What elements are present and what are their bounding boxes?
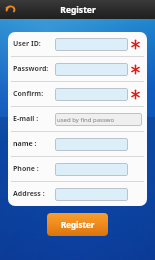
staticText: used by find passwo [57, 116, 115, 124]
button[interactable]: Password: [8, 57, 147, 81]
staticText: Register [61, 219, 95, 230]
button[interactable]: Confirm: [8, 82, 147, 106]
staticText: E-mail : [13, 114, 39, 124]
staticText: Confirm: [13, 89, 44, 99]
button[interactable]: Phone : [8, 157, 147, 181]
button[interactable]: E-mail : [8, 107, 147, 131]
staticText: Register [60, 4, 96, 16]
staticText: User ID: [13, 39, 41, 49]
button[interactable]: User ID: [8, 32, 147, 56]
staticText: Phone : [13, 164, 39, 174]
staticText: Address : [13, 189, 45, 199]
button[interactable]: Register [47, 213, 108, 236]
button[interactable]: name : [8, 132, 147, 156]
staticText: Password: [13, 64, 49, 74]
staticText: name : [13, 139, 37, 149]
button[interactable]: Back [2, 1, 19, 18]
button[interactable]: Address : [8, 182, 147, 206]
